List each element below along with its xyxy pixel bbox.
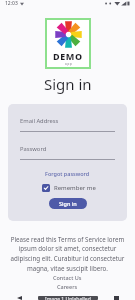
button[interactable]: Email Address	[20, 117, 115, 132]
staticText: DEMO	[53, 50, 83, 62]
button[interactable]: Contact Us	[50, 273, 85, 282]
button[interactable]: Sign in	[49, 198, 87, 209]
staticText: Email Address	[20, 117, 59, 125]
staticText: Careers	[57, 283, 78, 290]
staticText: Contact Us	[53, 274, 82, 281]
button[interactable]: Home	[38, 296, 98, 300]
staticText: Please read this Terms of Service lorem …	[9, 235, 126, 273]
button[interactable]: Remember me	[42, 184, 96, 192]
button[interactable]: Back	[12, 296, 26, 300]
staticText: Forgot password	[45, 170, 90, 177]
button[interactable]: Forgot password	[43, 168, 92, 179]
staticText: Remember me	[54, 184, 96, 192]
staticText: a p p	[65, 62, 72, 66]
button[interactable]: Recent apps	[109, 296, 123, 300]
button[interactable]: Password	[20, 145, 115, 160]
button[interactable]: DEMO	[45, 18, 91, 69]
staticText: Sign in	[59, 200, 77, 207]
staticText: Password	[20, 145, 47, 153]
staticText: Sign in	[44, 74, 92, 94]
staticText: 12:03	[5, 0, 18, 7]
button[interactable]: Careers	[54, 282, 81, 291]
staticText: Image 1 Unlabelled	[45, 296, 91, 300]
